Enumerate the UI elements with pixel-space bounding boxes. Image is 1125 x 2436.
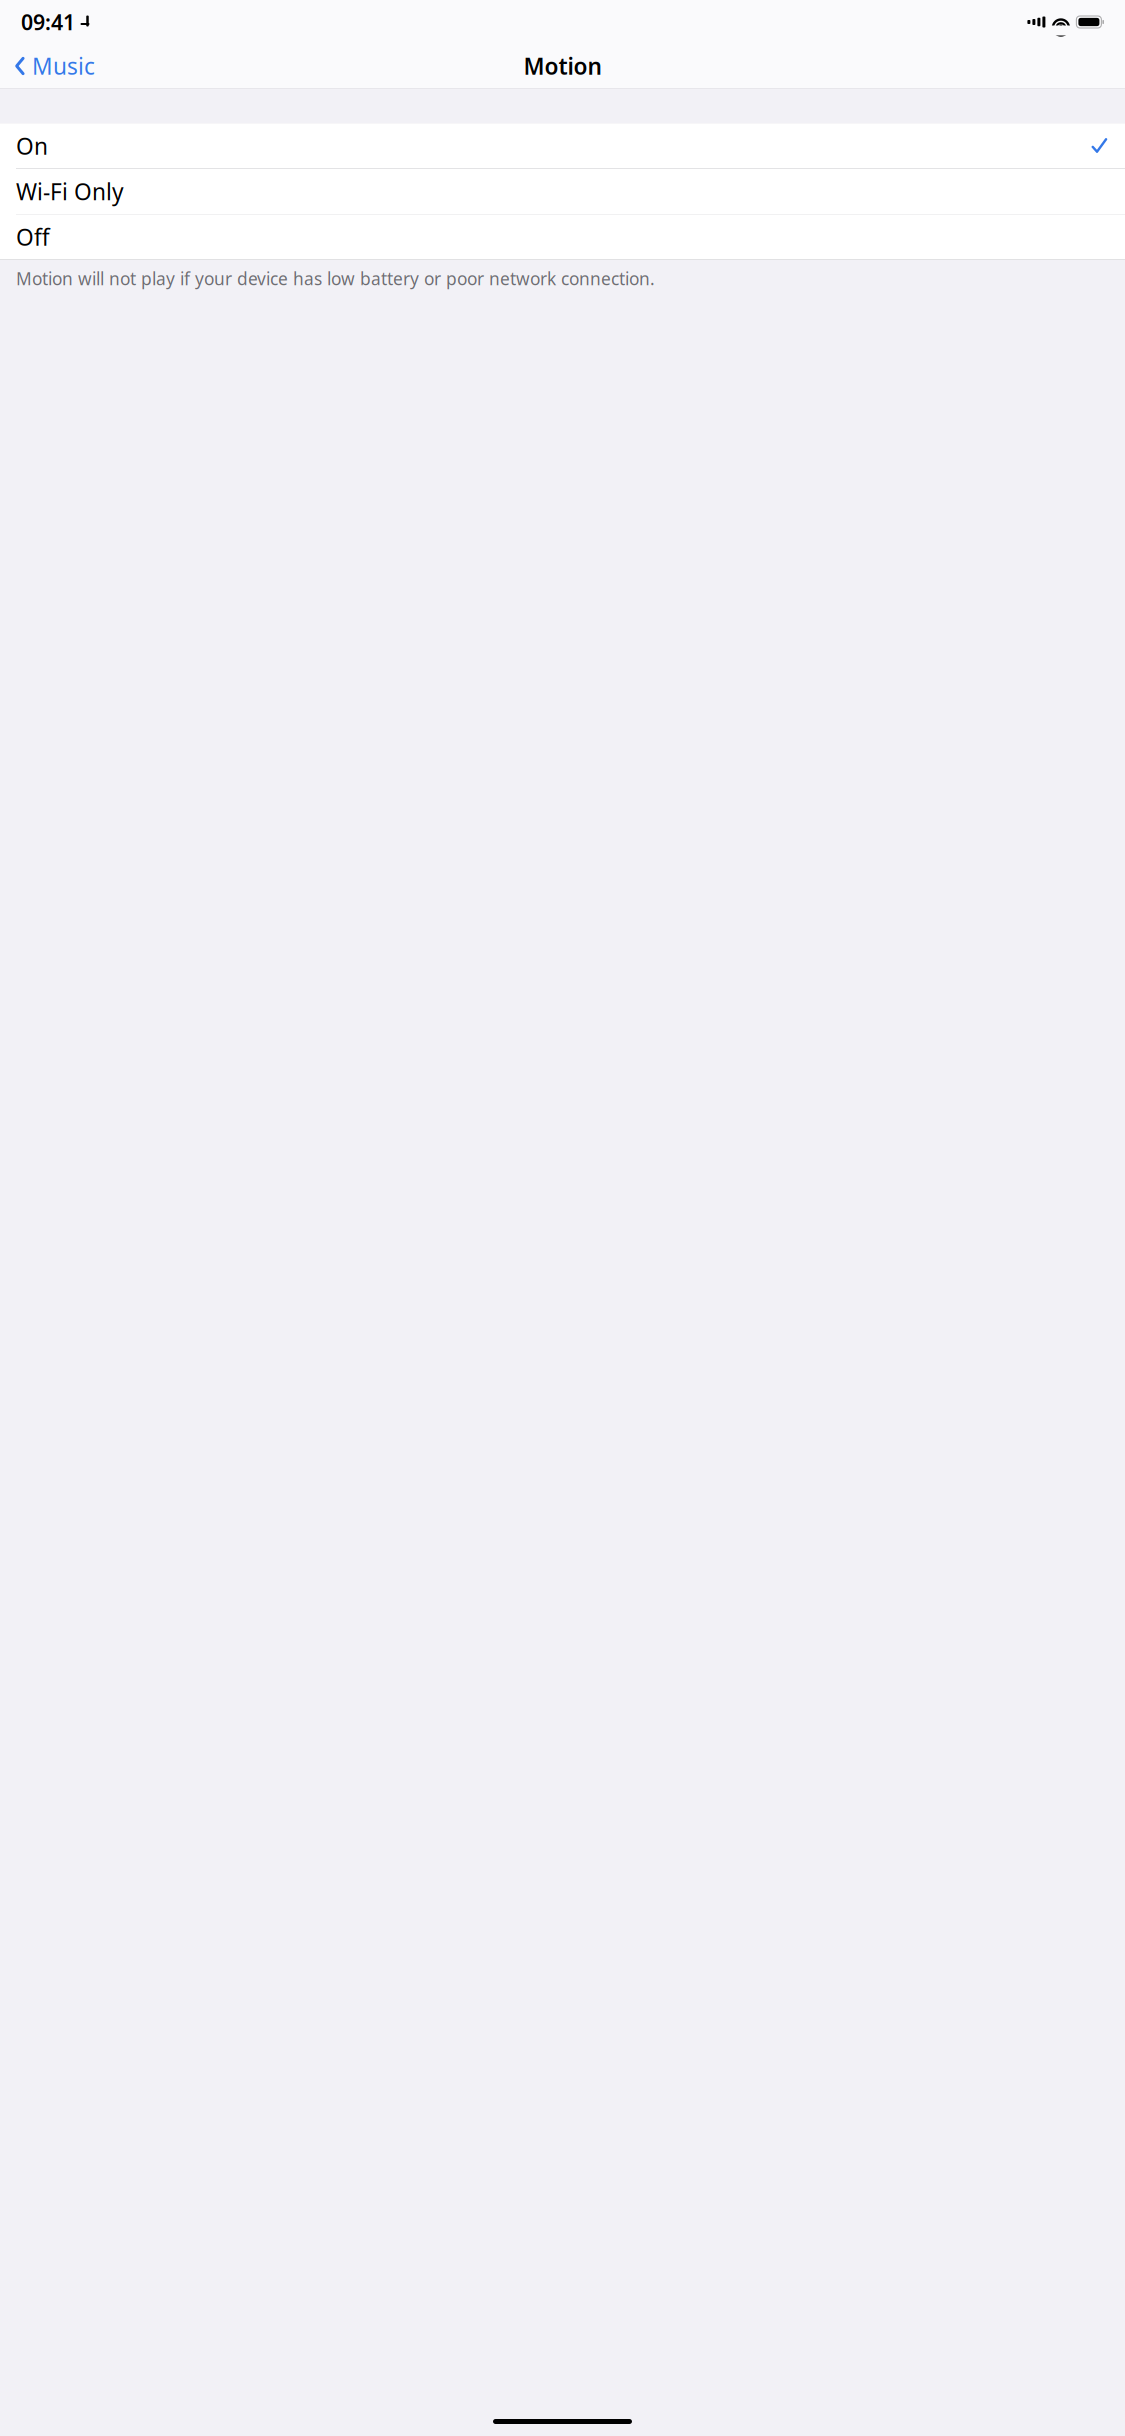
staticText: On: [16, 131, 48, 161]
button[interactable]: On: [0, 123, 1125, 168]
staticText: Music: [32, 51, 95, 81]
staticText: Motion will not play if your device has …: [16, 267, 655, 290]
button[interactable]: Wi-Fi Only: [0, 169, 1125, 214]
staticText: Motion: [523, 51, 601, 81]
staticText: Off: [16, 222, 50, 252]
button[interactable]: Music: [6, 45, 103, 87]
staticText: Wi-Fi Only: [16, 176, 124, 206]
staticText: 09:41: [21, 8, 75, 36]
button[interactable]: Off: [0, 214, 1125, 259]
